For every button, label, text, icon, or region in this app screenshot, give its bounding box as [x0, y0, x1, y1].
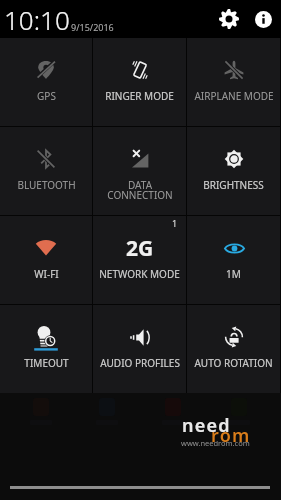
staticText: AUDIO PROFILES — [100, 356, 180, 370]
staticText: BLUETOOTH — [17, 178, 76, 192]
staticText: 2G — [126, 234, 154, 263]
staticText: BRIGHTNESS — [203, 178, 264, 192]
staticText: WI-FI — [34, 267, 59, 281]
button[interactable]: Settings — [215, 5, 243, 33]
staticText: AIRPLANE MODE — [194, 89, 274, 103]
button[interactable]: AUTO ROTATION — [187, 305, 280, 393]
staticText: TIMEOUT — [24, 356, 69, 370]
button[interactable]: BRIGHTNESS — [187, 127, 280, 215]
staticText: 1 — [172, 217, 178, 229]
staticText: 9/15/2016 — [71, 21, 114, 33]
staticText: 1M — [226, 267, 241, 281]
button[interactable]: RINGER MODE — [93, 38, 186, 126]
button[interactable]: AIRPLANE MODE — [187, 38, 280, 126]
staticText: RINGER MODE — [105, 89, 174, 103]
button[interactable]: Info — [251, 7, 275, 31]
button[interactable]: 2G — [93, 216, 186, 304]
staticText: need — [182, 413, 231, 438]
button[interactable]: DATA CONNECTION — [93, 127, 186, 215]
button[interactable]: AUDIO PROFILES — [93, 305, 186, 393]
button[interactable]: TIMEOUT — [0, 305, 92, 393]
button[interactable]: 1M — [187, 216, 280, 304]
button[interactable]: GPS — [0, 38, 92, 126]
staticText: 10:10 — [4, 2, 70, 37]
staticText: NETWORK MODE — [99, 267, 180, 281]
staticText: GPS — [37, 89, 56, 103]
staticText: rom — [211, 423, 251, 448]
staticText: www.needrom.com — [181, 438, 250, 448]
button[interactable]: WI-FI — [0, 216, 92, 304]
button[interactable]: BLUETOOTH — [0, 127, 92, 215]
staticText: AUTO ROTATION — [194, 356, 273, 370]
staticText: DATA CONNECTION — [107, 178, 173, 202]
